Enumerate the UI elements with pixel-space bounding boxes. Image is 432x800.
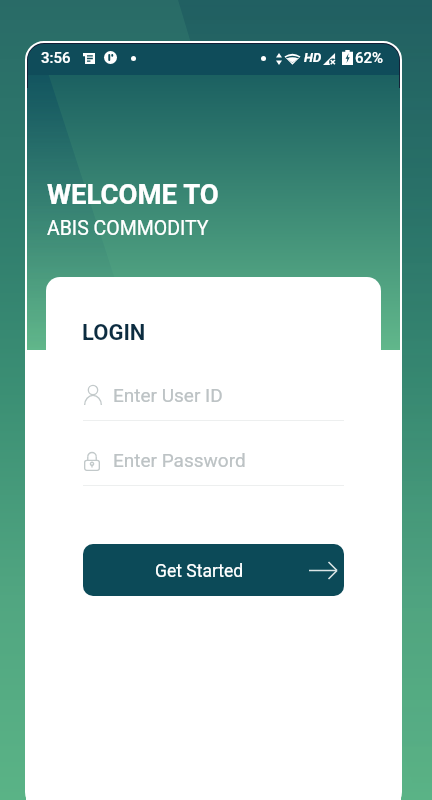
button[interactable]: Get Started xyxy=(83,544,344,596)
staticText: Enter User ID xyxy=(113,384,223,406)
other: Battery xyxy=(342,50,353,65)
other: Wi-Fi xyxy=(284,53,302,65)
other: Mobile signal xyxy=(323,53,337,65)
button[interactable]: Enter User ID xyxy=(83,376,344,421)
staticText: WELCOME TO xyxy=(47,178,219,210)
staticText: 62% xyxy=(355,49,384,67)
other: Messages xyxy=(83,53,95,64)
staticText: Get Started xyxy=(155,561,244,582)
button[interactable]: Enter Password xyxy=(83,441,344,486)
staticText: HD xyxy=(304,50,322,65)
staticText: 3:56 xyxy=(41,49,71,67)
other: Notification xyxy=(104,51,117,64)
staticText: ABIS COMMODITY xyxy=(47,217,209,240)
staticText: LOGIN xyxy=(82,320,146,346)
staticText: Enter Password xyxy=(113,449,246,471)
